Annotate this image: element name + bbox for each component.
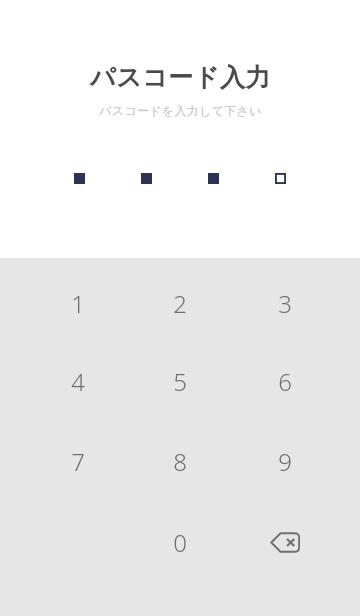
button[interactable]: 7 (30, 424, 126, 498)
button[interactable]: 0 (132, 505, 228, 579)
button[interactable]: 8 (132, 424, 228, 498)
button[interactable]: 1 (30, 266, 126, 340)
staticText: 1 (71, 287, 85, 320)
button[interactable]: 6 (237, 344, 333, 418)
staticText: パスコードを入力して下さい (99, 103, 262, 118)
button[interactable]: 5 (132, 344, 228, 418)
button[interactable]: 4 (30, 344, 126, 418)
staticText: 4 (71, 365, 85, 398)
staticText: 7 (71, 445, 85, 478)
staticText: 0 (173, 526, 187, 559)
staticText: 9 (278, 445, 292, 478)
button[interactable]: Backspace (237, 505, 333, 579)
button[interactable]: 2 (132, 266, 228, 340)
button[interactable]: 3 (237, 266, 333, 340)
staticText: 8 (173, 445, 187, 478)
staticText: 2 (173, 287, 187, 320)
staticText: パスコード入力 (90, 62, 271, 93)
staticText: 3 (278, 287, 292, 320)
staticText: 6 (278, 365, 292, 398)
staticText: 5 (173, 365, 187, 398)
button[interactable]: 9 (237, 424, 333, 498)
